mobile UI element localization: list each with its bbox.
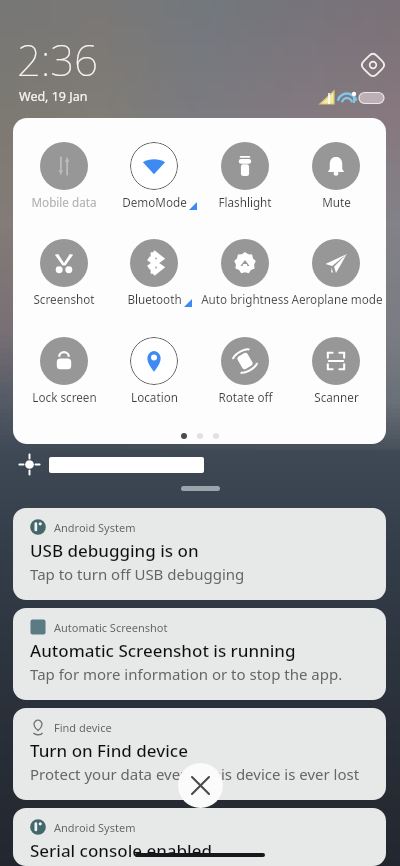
staticText: Automatic Screenshot is running <box>30 639 296 662</box>
button[interactable] <box>49 457 204 473</box>
staticText: Rotate off <box>218 389 273 405</box>
staticText: Location <box>131 389 178 405</box>
staticText: Tap to turn off USB debugging <box>30 564 245 584</box>
button[interactable]: Android System <box>13 508 386 600</box>
button[interactable]: Screenshot <box>19 239 109 311</box>
button[interactable]: Location <box>109 337 199 409</box>
staticText: Find device <box>54 720 112 735</box>
button[interactable]: Mobile data <box>19 142 109 214</box>
staticText: Mobile data <box>31 194 97 210</box>
button[interactable]: Settings <box>359 51 387 79</box>
staticText: Automatic Screenshot <box>54 620 168 635</box>
staticText: Turn on Find device <box>30 739 188 762</box>
button[interactable]: Mute <box>291 142 381 214</box>
staticText: Aeroplane mode <box>291 291 381 307</box>
button[interactable]: Automatic Screenshot <box>13 608 386 700</box>
button[interactable]: Bluetooth <box>109 239 199 311</box>
button[interactable]: Find device <box>13 708 386 800</box>
button[interactable]: Aeroplane mode <box>291 239 381 311</box>
staticText: Flashlight <box>218 194 272 210</box>
button[interactable]: Lock screen <box>19 337 109 409</box>
button[interactable]: DemoMode <box>109 142 199 214</box>
button[interactable]: Close <box>178 763 223 808</box>
staticText: Tap for more information or to stop the … <box>30 664 343 684</box>
staticText: Bluetooth <box>127 291 182 307</box>
staticText: Lock screen <box>32 389 97 405</box>
button[interactable]: Rotate off <box>200 337 290 409</box>
staticText: Wed, 19 Jan <box>19 88 88 105</box>
staticText: Protect your data even if this device is… <box>30 764 360 784</box>
button[interactable]: Scanner <box>291 337 381 409</box>
staticText: Mute <box>322 194 351 210</box>
staticText: USB debugging is on <box>30 539 199 562</box>
staticText: Screenshot <box>33 291 95 307</box>
staticText: Auto brightness <box>201 291 289 307</box>
staticText: Android System <box>54 520 136 535</box>
staticText: Serial console enabled <box>30 839 213 862</box>
staticText: Android System <box>54 820 136 835</box>
button[interactable]: Android System <box>13 808 386 866</box>
button[interactable]: Flashlight <box>200 142 290 214</box>
button[interactable]: Brightness <box>18 453 41 476</box>
staticText: DemoMode <box>122 194 187 210</box>
staticText: Scanner <box>314 389 359 405</box>
button[interactable]: Auto brightness <box>200 239 290 311</box>
staticText: 2:36 <box>17 31 99 88</box>
